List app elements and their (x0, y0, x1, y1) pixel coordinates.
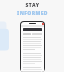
button[interactable]: Article headline (23, 28, 42, 31)
button[interactable]: Navigation bar (21, 22, 44, 72)
staticText: STAY (25, 2, 40, 9)
staticText: INFORMED (17, 10, 48, 17)
